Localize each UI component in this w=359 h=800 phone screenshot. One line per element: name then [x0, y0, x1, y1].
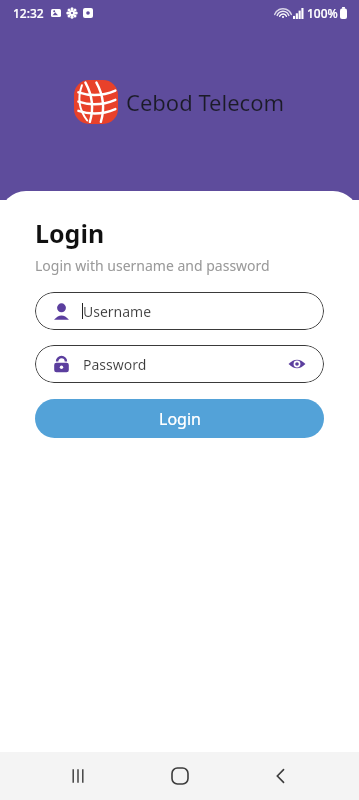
button[interactable]: Password	[35, 345, 324, 383]
staticText: Login	[35, 216, 105, 250]
button[interactable]: Show password	[286, 353, 308, 375]
button[interactable]: Recent apps	[55, 753, 101, 799]
staticText: 100%	[307, 5, 338, 21]
button[interactable]: Username	[35, 292, 324, 330]
staticText: Cebod Telecom	[126, 87, 285, 117]
button[interactable]: Login	[35, 399, 324, 438]
staticText: 12:32	[13, 5, 44, 21]
button[interactable]: Back	[258, 753, 304, 799]
staticText: Username	[83, 302, 152, 321]
staticText: Login with username and password	[35, 256, 270, 275]
staticText: Password	[83, 355, 286, 374]
button[interactable]: Home	[157, 753, 203, 799]
staticText: Login	[159, 408, 201, 430]
